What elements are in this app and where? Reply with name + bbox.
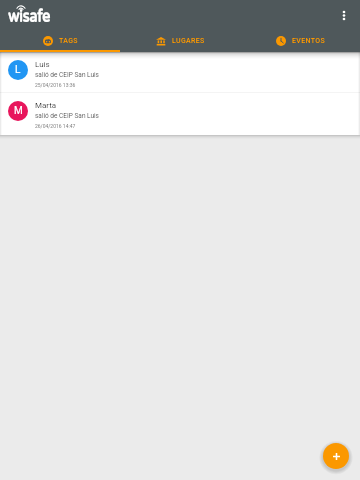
staticText: wisafe [8,6,50,27]
staticText: M [14,105,23,117]
staticText: Marta [35,101,57,110]
button[interactable]: LUGARES [120,29,240,52]
staticText: L [15,64,21,76]
staticText: EVENTOS [292,37,325,45]
staticText: Luis [35,60,50,69]
button[interactable]: Add [323,443,349,469]
staticText: salió de CEIP San Luis [35,71,99,79]
staticText: salió de CEIP San Luis [35,112,99,120]
staticText: 26/04/2016 14:47 [35,123,76,129]
button[interactable]: EVENTOS [240,29,360,52]
staticText: LUGARES [172,37,205,45]
button[interactable]: M [0,93,360,133]
button[interactable]: L [0,52,360,92]
button[interactable]: More options [331,0,360,29]
staticText: 25/04/2016 13:36 [35,82,76,88]
button[interactable]: TAGS [0,29,120,52]
staticText: TAGS [59,37,78,45]
